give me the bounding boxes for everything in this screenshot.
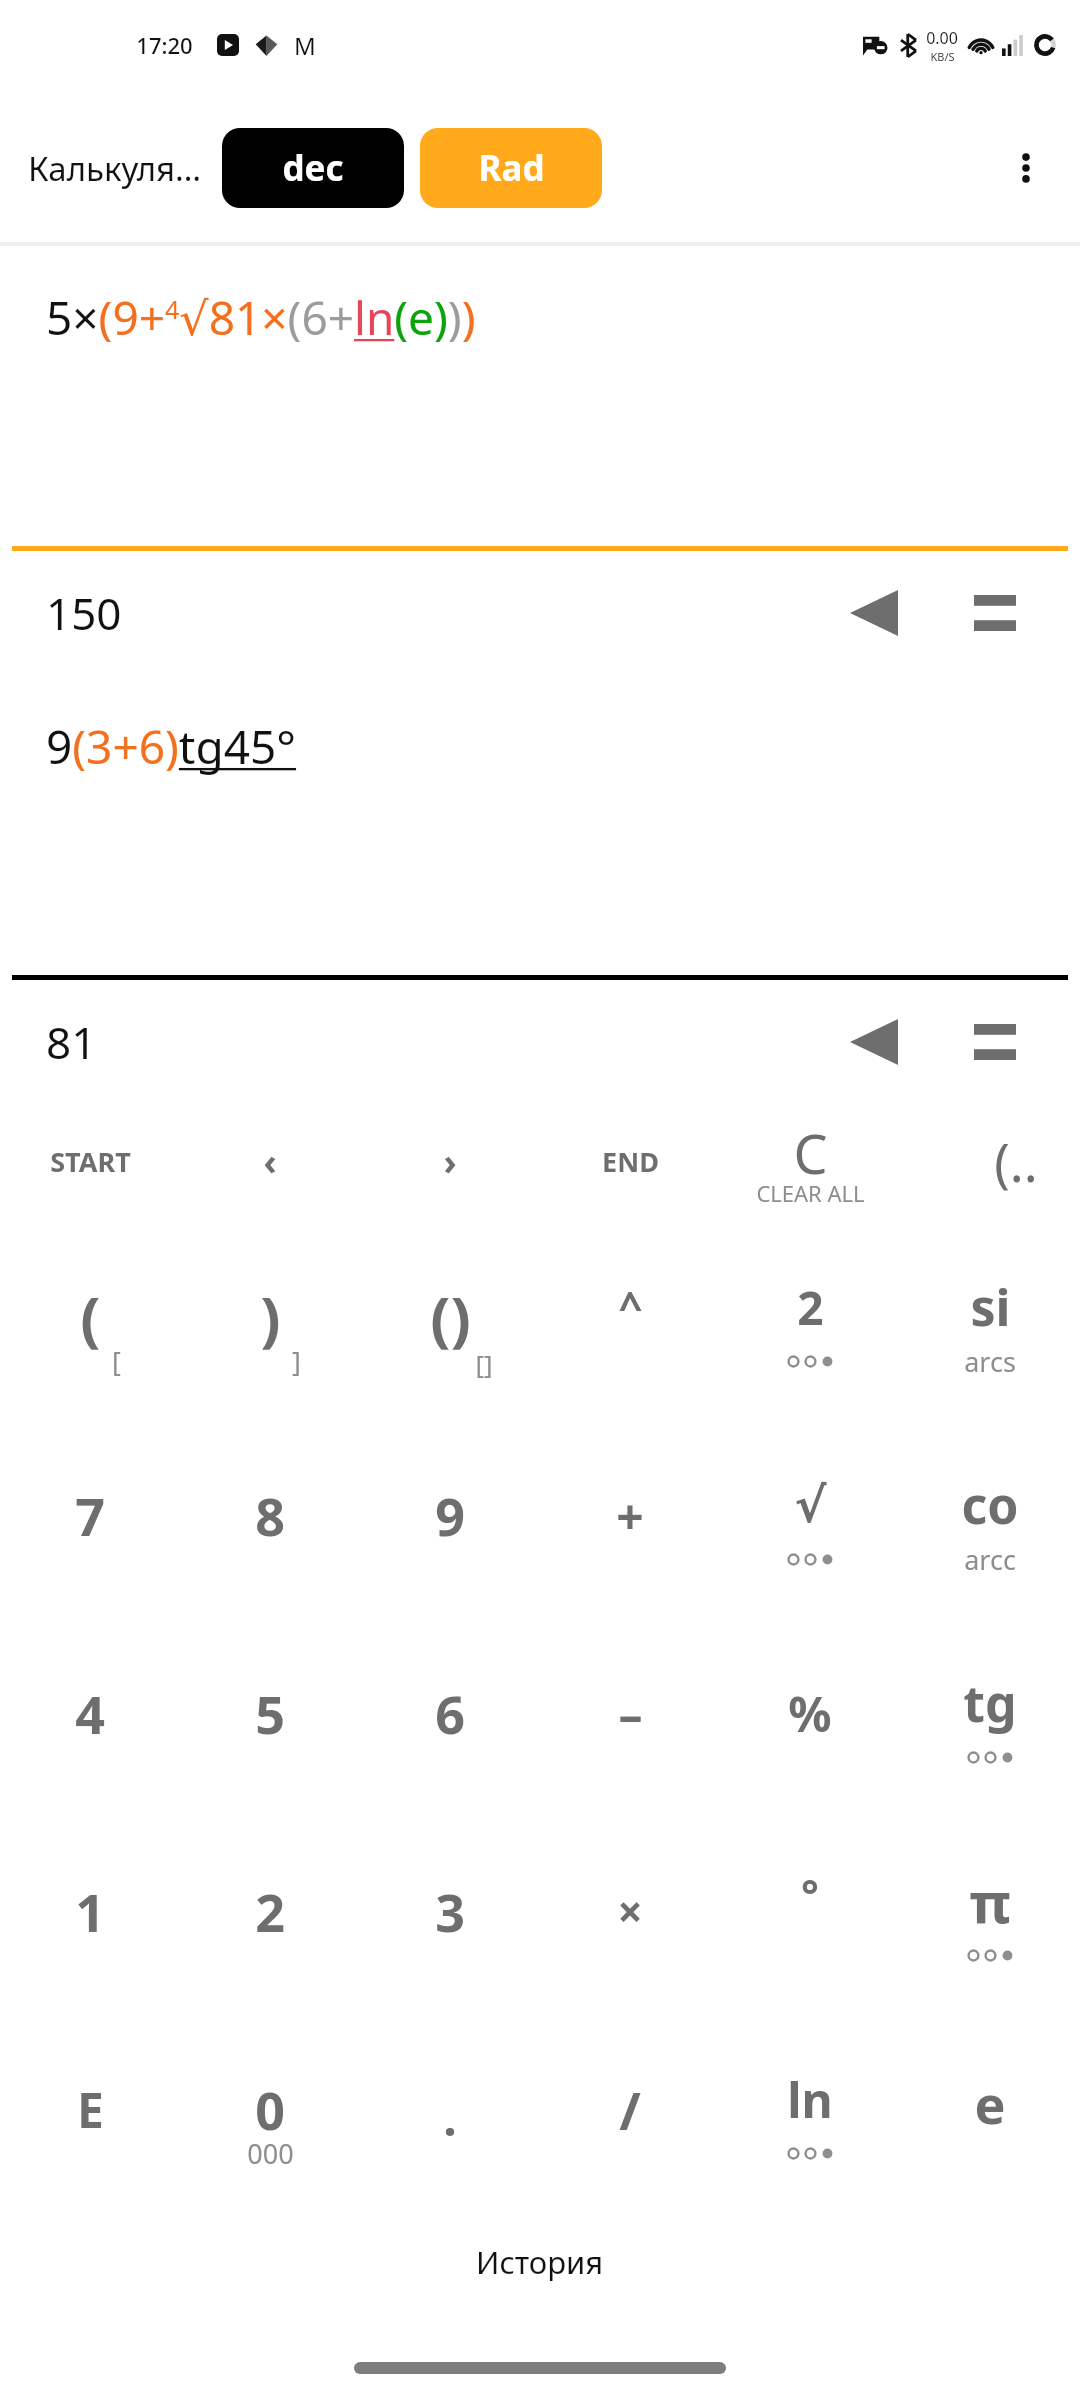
- button[interactable]: Equals 2: [946, 993, 1044, 1091]
- button[interactable]: 3: [360, 1812, 540, 2010]
- button[interactable]: °: [720, 1812, 900, 2010]
- staticText: /: [619, 2074, 641, 2145]
- button[interactable]: Backspace 2: [818, 986, 930, 1098]
- staticText: 9(3+6)tg45°: [46, 715, 297, 778]
- staticText: si: [970, 1273, 1011, 1341]
- staticText: 1: [75, 1876, 105, 1947]
- staticText: π: [969, 1863, 1011, 1939]
- staticText: %: [788, 1681, 832, 1746]
- staticText: ]: [292, 1343, 301, 1380]
- button[interactable]: π: [900, 1812, 1080, 2010]
- staticText: dec: [282, 144, 344, 192]
- staticText: 4: [75, 1678, 105, 1749]
- staticText: 9: [435, 1480, 465, 1551]
- staticText: CLEAR ALL: [756, 1178, 865, 1208]
- staticText: START: [50, 1143, 131, 1180]
- staticText: +: [616, 1483, 644, 1548]
- button[interactable]: ×: [540, 1812, 720, 2010]
- staticText: 81: [46, 1012, 97, 1072]
- button[interactable]: История: [0, 2208, 1080, 2316]
- button[interactable]: Equals 1: [946, 564, 1044, 662]
- staticText: √: [794, 1477, 827, 1533]
- staticText: ‹: [263, 1137, 277, 1186]
- button[interactable]: tg: [900, 1614, 1080, 1812]
- button[interactable]: 5: [180, 1614, 360, 1812]
- button[interactable]: %: [720, 1614, 900, 1812]
- staticText: ›: [443, 1137, 457, 1186]
- button[interactable]: ‹: [180, 1104, 360, 1218]
- button[interactable]: More options: [994, 136, 1058, 200]
- staticText: °: [801, 1865, 819, 1922]
- staticText: (: [80, 1276, 101, 1358]
- staticText: История: [476, 2241, 604, 2283]
- staticText: –: [618, 1681, 643, 1746]
- staticText: 3: [435, 1876, 465, 1947]
- staticText: 0.00: [926, 27, 958, 49]
- button[interactable]: START: [0, 1104, 180, 1218]
- staticText: .: [443, 2085, 457, 2150]
- staticText: C: [793, 1116, 828, 1190]
- staticText: 17:20: [136, 30, 193, 60]
- staticText: ln: [787, 2067, 833, 2132]
- staticText: []: [475, 1346, 493, 1381]
- button[interactable]: (..: [900, 1104, 1080, 1218]
- staticText: ×: [617, 1881, 643, 1941]
- staticText: END: [602, 1143, 659, 1180]
- staticText: (): [430, 1276, 471, 1358]
- button[interactable]: √: [720, 1416, 900, 1614]
- staticText: e: [974, 2068, 1006, 2139]
- button[interactable]: +: [540, 1416, 720, 1614]
- button[interactable]: 0: [180, 2010, 360, 2208]
- button[interactable]: 9: [360, 1416, 540, 1614]
- staticText: ^: [618, 1277, 643, 1334]
- button[interactable]: Rad: [420, 128, 602, 208]
- staticText: tg: [963, 1669, 1017, 1737]
- button[interactable]: e: [900, 2010, 1080, 2208]
- staticText: 000: [247, 2135, 294, 2172]
- staticText: 7: [75, 1480, 105, 1551]
- button[interactable]: C: [720, 1104, 900, 1218]
- staticText: co: [961, 1471, 1019, 1539]
- button[interactable]: 8: [180, 1416, 360, 1614]
- button[interactable]: 4: [0, 1614, 180, 1812]
- button[interactable]: ): [180, 1218, 360, 1416]
- button[interactable]: ^: [540, 1218, 720, 1416]
- staticText: arcc: [964, 1541, 1016, 1578]
- staticText: 150: [46, 583, 122, 643]
- button[interactable]: 2: [720, 1218, 900, 1416]
- staticText: 5: [255, 1678, 285, 1749]
- button[interactable]: 2: [180, 1812, 360, 2010]
- staticText: KB/S: [930, 49, 955, 64]
- button[interactable]: –: [540, 1614, 720, 1812]
- staticText: E: [77, 2077, 104, 2142]
- button[interactable]: 1: [0, 1812, 180, 2010]
- button[interactable]: END: [540, 1104, 720, 1218]
- staticText: arcs: [964, 1343, 1016, 1380]
- button[interactable]: E: [0, 2010, 180, 2208]
- button[interactable]: Backspace 1: [818, 557, 930, 669]
- button[interactable]: (: [0, 1218, 180, 1416]
- staticText: 2: [255, 1876, 285, 1947]
- button[interactable]: .: [360, 2010, 540, 2208]
- button[interactable]: 6: [360, 1614, 540, 1812]
- staticText: Калькуля…: [28, 146, 202, 191]
- button[interactable]: dec: [222, 128, 404, 208]
- staticText: M: [294, 29, 316, 62]
- button[interactable]: si: [900, 1218, 1080, 1416]
- button[interactable]: ›: [360, 1104, 540, 1218]
- staticText: Rad: [478, 144, 545, 192]
- staticText: 6: [435, 1678, 465, 1749]
- staticText: ): [260, 1276, 281, 1358]
- staticText: 8: [255, 1480, 285, 1551]
- button[interactable]: (): [360, 1218, 540, 1416]
- staticText: 5×(9+4√81×(6+ln(e))): [46, 286, 476, 349]
- staticText: 2: [797, 1276, 824, 1339]
- staticText: [: [112, 1343, 121, 1380]
- staticText: 0: [255, 2074, 285, 2145]
- button[interactable]: ln: [720, 2010, 900, 2208]
- button[interactable]: 7: [0, 1416, 180, 1614]
- staticText: (..: [994, 1126, 1038, 1197]
- button[interactable]: co: [900, 1416, 1080, 1614]
- button[interactable]: /: [540, 2010, 720, 2208]
